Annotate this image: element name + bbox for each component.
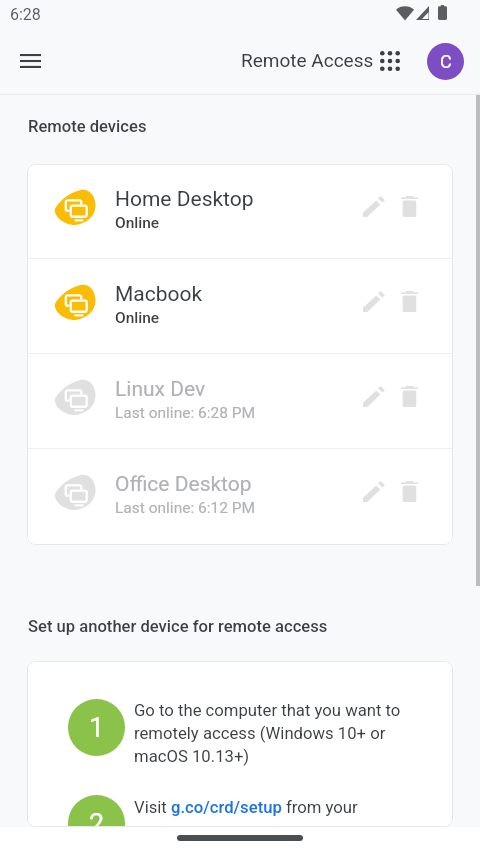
button[interactable]: Office Desktop	[27, 449, 453, 543]
staticText: Remote Access	[241, 49, 374, 71]
staticText: Linux Dev	[115, 377, 206, 402]
button[interactable]: Linux Dev	[27, 354, 453, 448]
staticText: Visit g.co/crd/setup from your	[134, 798, 358, 818]
staticText: Last online: 6:28 PM	[115, 404, 256, 422]
button[interactable]: Edit	[352, 469, 396, 513]
staticText: 1	[89, 712, 105, 744]
button[interactable]: Account	[427, 43, 464, 80]
staticText: Last online: 6:12 PM	[115, 499, 256, 517]
button[interactable]: Home Desktop	[27, 164, 453, 258]
button[interactable]: Menu	[8, 39, 52, 83]
staticText: 6:28	[10, 5, 41, 24]
button[interactable]: Delete	[387, 279, 431, 323]
button[interactable]: Macbook	[27, 259, 453, 353]
button[interactable]: Delete	[387, 374, 431, 418]
staticText: Home Desktop	[115, 187, 254, 212]
button[interactable]: Edit	[352, 374, 396, 418]
button[interactable]: Edit	[352, 184, 396, 228]
button[interactable]: Delete	[387, 469, 431, 513]
button[interactable]: Edit	[352, 279, 396, 323]
button[interactable]: Google apps	[371, 42, 409, 80]
staticText: Office Desktop	[115, 472, 252, 497]
staticText: Set up another device for remote access	[28, 617, 328, 636]
staticText: 2	[89, 808, 105, 827]
staticText: C	[440, 51, 452, 72]
staticText: Online	[115, 214, 160, 232]
staticText: Macbook	[115, 282, 203, 307]
staticText: Go to the computer that you want to remo…	[134, 701, 401, 767]
staticText: Remote devices	[28, 117, 147, 136]
button[interactable]: Delete	[387, 184, 431, 228]
staticText: Online	[115, 309, 160, 327]
